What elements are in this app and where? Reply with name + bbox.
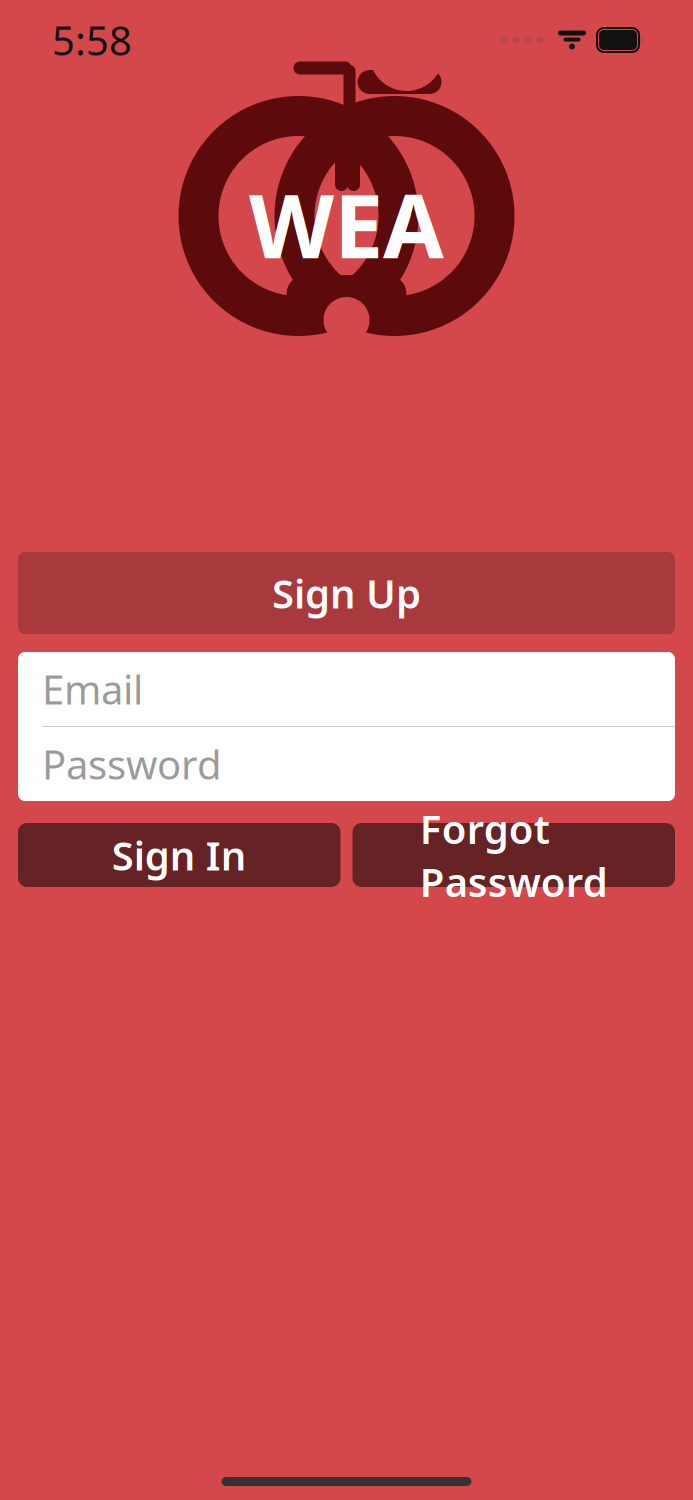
staticText: 5:58 <box>52 13 132 66</box>
button[interactable]: Email <box>18 652 675 726</box>
staticText: Sign In <box>112 828 247 881</box>
staticText: Sign Up <box>272 566 421 619</box>
staticText: WEA <box>249 166 444 282</box>
button[interactable]: Forgot Password <box>352 823 675 887</box>
staticText: Password <box>42 737 222 790</box>
button[interactable]: Password <box>18 727 675 801</box>
staticText: Email <box>42 662 143 715</box>
staticText: Forgot Password <box>420 802 608 908</box>
button[interactable]: Sign Up <box>18 552 675 634</box>
button[interactable]: Sign In <box>18 823 340 887</box>
